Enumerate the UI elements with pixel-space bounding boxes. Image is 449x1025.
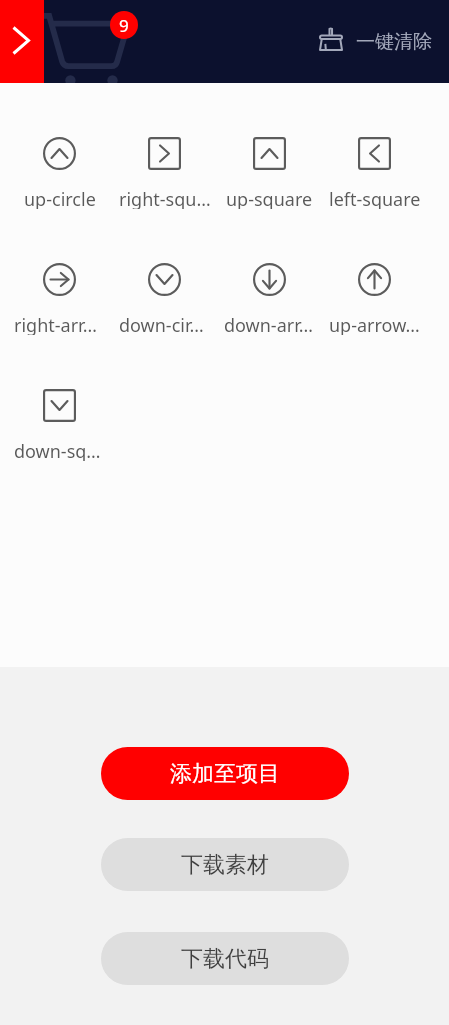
button[interactable]: 一键清除 bbox=[319, 30, 432, 54]
button[interactable]: down-cir… bbox=[112, 209, 217, 335]
button[interactable]: Shopping cart bbox=[44, 0, 154, 83]
staticText: up-arrow… bbox=[329, 313, 420, 335]
staticText: up-square bbox=[226, 187, 313, 209]
button[interactable]: left-square bbox=[322, 83, 427, 209]
button[interactable]: up-arrow… bbox=[322, 209, 427, 335]
button[interactable]: up-circle bbox=[7, 83, 112, 209]
staticText: 下载代码 bbox=[181, 945, 269, 973]
staticText: 添加至项目 bbox=[170, 760, 280, 788]
button[interactable]: right-arr… bbox=[7, 209, 112, 335]
staticText: up-circle bbox=[24, 187, 96, 209]
staticText: 下载素材 bbox=[181, 851, 269, 879]
staticText: right-arr… bbox=[14, 313, 97, 335]
button[interactable]: 下载代码 bbox=[101, 932, 349, 985]
button[interactable]: Open panel bbox=[0, 0, 44, 83]
staticText: down-sq… bbox=[14, 439, 101, 461]
button[interactable]: up-square bbox=[217, 83, 322, 209]
button[interactable]: down-sq… bbox=[7, 335, 112, 461]
button[interactable]: 添加至项目 bbox=[101, 747, 349, 800]
staticText: 9 bbox=[119, 14, 129, 37]
button[interactable]: down-arr… bbox=[217, 209, 322, 335]
staticText: 一键清除 bbox=[356, 30, 432, 54]
staticText: down-cir… bbox=[119, 313, 204, 335]
staticText: left-square bbox=[329, 187, 420, 209]
button[interactable]: 下载素材 bbox=[101, 838, 349, 891]
button[interactable]: right-squ… bbox=[112, 83, 217, 209]
staticText: down-arr… bbox=[224, 313, 313, 335]
staticText: right-squ… bbox=[119, 187, 210, 209]
